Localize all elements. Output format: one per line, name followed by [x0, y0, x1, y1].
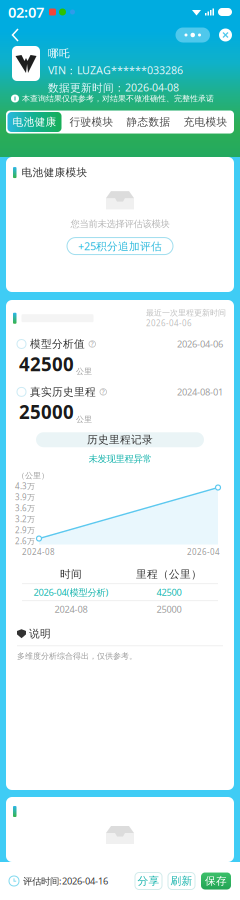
staticText: 充电模块: [183, 115, 227, 128]
staticText: +25积分追加评估: [78, 239, 162, 253]
staticText: ?: [102, 387, 105, 396]
staticText: 02:07: [8, 2, 44, 22]
staticText: 电池健康: [12, 115, 56, 128]
button[interactable]: +25积分追加评估: [67, 238, 173, 255]
staticText: 分享: [137, 874, 159, 887]
staticText: 3.6万: [15, 503, 35, 513]
button[interactable]: 分享: [135, 872, 162, 889]
button[interactable]: 保存: [201, 872, 231, 889]
staticText: 4.3万: [15, 481, 35, 491]
staticText: VIN：LUZAG******033286: [48, 63, 183, 77]
staticText: 刷新: [170, 874, 192, 887]
button[interactable]: 更多: [175, 27, 210, 42]
button[interactable]: 关闭: [216, 25, 235, 44]
staticText: 时间: [60, 568, 82, 581]
staticText: 数据更新时间：2026-04-08: [48, 80, 179, 94]
staticText: 2024-08: [54, 603, 87, 615]
button[interactable]: 电池健康: [6, 110, 63, 133]
staticText: 42500: [156, 586, 181, 598]
staticText: 2024-08: [22, 546, 55, 557]
staticText: 42500: [19, 352, 74, 376]
button[interactable]: 静态数据: [120, 110, 177, 133]
staticText: 公里: [76, 366, 92, 376]
staticText: 您当前未选择评估该模块: [70, 218, 169, 230]
staticText: 行驶模块: [69, 115, 113, 128]
staticText: 多维度分析综合得出，仅供参考。: [17, 651, 137, 661]
staticText: 2026-04: [187, 546, 220, 557]
staticText: 2026-04-06: [177, 338, 223, 350]
staticText: 评估时间:2026-04-16: [23, 875, 108, 887]
staticText: 2026-04(模型分析): [33, 586, 108, 598]
staticText: 2.6万: [15, 536, 35, 546]
staticText: 本查询结果仅供参考，对结果不做准确性、完整性承诺: [22, 94, 214, 103]
button[interactable]: 行驶模块: [63, 110, 120, 133]
staticText: 25000: [19, 399, 74, 424]
staticText: 静态数据: [126, 115, 170, 128]
staticText: 电池健康模块: [21, 166, 87, 179]
staticText: （公里）: [17, 471, 49, 480]
staticText: 公里: [76, 414, 92, 424]
staticText: 保存: [205, 874, 227, 887]
staticText: 2024-08-01: [177, 386, 223, 398]
staticText: 25000: [156, 603, 181, 615]
staticText: 历史里程记录: [87, 433, 153, 446]
button[interactable]: 返回: [5, 24, 26, 46]
staticText: ?: [91, 340, 94, 348]
staticText: 3.9万: [15, 492, 35, 502]
staticText: 里程（公里）: [136, 568, 202, 581]
button[interactable]: 充电模块: [177, 110, 234, 133]
staticText: 3.2万: [15, 514, 35, 524]
staticText: 未发现里程异常: [88, 453, 151, 465]
staticText: 说明: [29, 627, 51, 640]
staticText: 模型分析值: [30, 337, 85, 351]
button[interactable]: 刷新: [168, 872, 195, 889]
staticText: 2.9万: [15, 525, 35, 535]
staticText: 最近一次里程更新时间2026-04-06: [146, 308, 226, 328]
staticText: 哪吒: [48, 47, 70, 60]
staticText: 真实历史里程: [30, 385, 96, 398]
